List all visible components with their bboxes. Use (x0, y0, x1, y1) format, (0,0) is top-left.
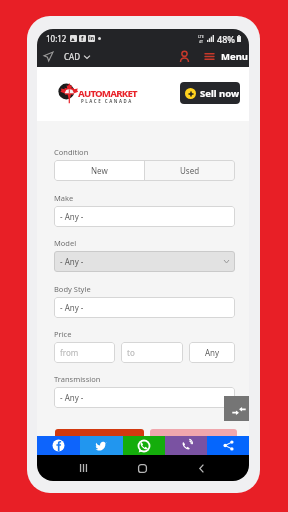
staticText: Body Style (54, 284, 91, 294)
staticText: 10:12 (46, 33, 67, 44)
staticText: Condition (54, 147, 89, 157)
staticText: Any (205, 347, 220, 358)
staticText: PLACE CANADA (81, 98, 133, 104)
staticText: Used (180, 165, 200, 176)
button[interactable]: - Any - (54, 206, 235, 227)
button[interactable]: to (121, 342, 183, 363)
staticText: 4T (199, 39, 203, 44)
staticText: - Any - (60, 211, 84, 222)
staticText: Sell now (200, 87, 240, 100)
staticText: to (127, 347, 135, 358)
staticText: from (60, 347, 79, 358)
button[interactable]: Menu (205, 46, 248, 67)
staticText: New (91, 165, 108, 176)
staticText: Menu (221, 50, 248, 63)
button[interactable]: Account (175, 45, 194, 67)
staticText: Model (54, 238, 77, 248)
button[interactable]: Viber (165, 436, 207, 455)
button[interactable]: Location (37, 45, 59, 67)
staticText: 48% (217, 33, 235, 45)
staticText: Price (54, 329, 72, 339)
staticText: - Any - (60, 256, 84, 267)
button[interactable]: Share (207, 436, 249, 455)
button[interactable]: Back (189, 455, 213, 481)
staticText: in (89, 35, 94, 42)
button[interactable] (55, 429, 144, 445)
staticText: Make (54, 193, 74, 203)
button[interactable]: Collapse (224, 396, 249, 421)
button[interactable]: New (54, 160, 144, 181)
staticText: Transmission (54, 374, 101, 384)
staticText: - Any - (60, 302, 84, 313)
staticText: - Any - (60, 392, 84, 403)
button[interactable]: Sell now (180, 82, 240, 104)
button[interactable]: Recents (71, 455, 95, 481)
button[interactable]: from (54, 342, 115, 363)
button[interactable]: Used (145, 160, 235, 181)
button[interactable]: CAD (62, 47, 92, 66)
staticText: f (81, 35, 84, 42)
button[interactable]: Any (189, 342, 235, 363)
button[interactable]: - Any - (54, 387, 235, 408)
button[interactable] (150, 429, 237, 445)
button[interactable]: - Any - (54, 251, 235, 272)
staticText: LTE (198, 34, 204, 39)
button[interactable]: Home (130, 455, 154, 481)
staticText: CAD (64, 51, 81, 62)
staticText: AUTOMARKET (78, 87, 137, 100)
button[interactable]: WhatsApp (123, 436, 165, 455)
button[interactable]: - Any - (54, 297, 235, 318)
button[interactable]: Facebook (37, 436, 80, 455)
button[interactable]: Twitter (80, 436, 123, 455)
